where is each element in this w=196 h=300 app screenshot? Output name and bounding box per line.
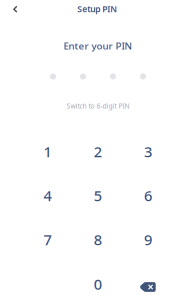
button[interactable]: Delete [123, 265, 173, 300]
button[interactable]: Back [1, 0, 29, 20]
button[interactable]: 3 [123, 129, 173, 173]
button[interactable]: 8 [73, 217, 123, 261]
button[interactable]: 5 [73, 173, 123, 217]
staticText: 9 [144, 229, 152, 249]
staticText: 1 [43, 141, 51, 161]
staticText: 0 [94, 274, 102, 294]
button[interactable]: 2 [73, 129, 123, 173]
button[interactable]: 9 [123, 217, 173, 261]
staticText: 2 [94, 141, 102, 161]
staticText: 5 [94, 185, 102, 205]
button[interactable]: 4 [22, 173, 72, 217]
button[interactable]: 0 [73, 262, 123, 300]
button[interactable]: 1 [22, 129, 72, 173]
button[interactable]: Switch to 6-digit PIN [58, 99, 138, 113]
staticText: Setup PIN [77, 3, 117, 15]
staticText: 7 [43, 229, 51, 249]
staticText: 6 [144, 185, 152, 205]
staticText: 3 [144, 141, 152, 161]
button[interactable]: 7 [22, 217, 72, 261]
staticText: Enter your PIN [63, 39, 132, 52]
staticText: 4 [43, 185, 51, 205]
staticText: 8 [94, 229, 102, 249]
button[interactable]: 6 [123, 173, 173, 217]
staticText: Switch to 6-digit PIN [66, 101, 129, 111]
